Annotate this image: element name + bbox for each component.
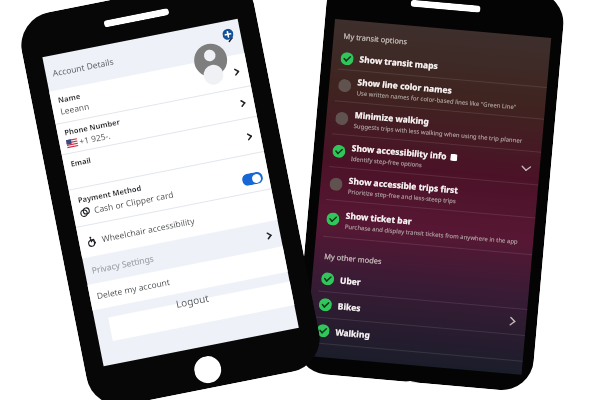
button[interactable]: Show line color names — [328, 69, 547, 120]
staticText: Name — [57, 91, 81, 105]
staticText: Suggests trips with less walking when us… — [353, 122, 523, 145]
staticText: Wheelchair accessibility — [101, 215, 196, 245]
button[interactable]: Account Details — [42, 19, 244, 92]
button[interactable]: Payment Method — [69, 152, 271, 227]
button[interactable]: Phone Number — [56, 86, 257, 154]
staticText: +1 925-. — [78, 130, 112, 148]
staticText: Email — [70, 155, 92, 169]
staticText: Bikes — [337, 300, 361, 314]
button[interactable]: Home — [396, 380, 427, 383]
staticText: Walking — [335, 326, 371, 341]
staticText: Use written names for color-based lines … — [356, 89, 517, 111]
staticText: Identify step-free options — [350, 155, 423, 169]
staticText: Leeann — [59, 100, 91, 118]
button[interactable]: Email — [62, 117, 264, 190]
button[interactable]: Delete my account — [87, 246, 288, 310]
button[interactable]: Cash or Clipper card toggle — [241, 171, 264, 187]
button[interactable]: Show accessible trips first — [319, 166, 538, 218]
staticText: Show transit maps — [359, 53, 439, 72]
button[interactable]: Show ticket bar — [316, 199, 535, 255]
staticText: Show line color names — [357, 76, 453, 97]
staticText: Show accessible trips first — [348, 175, 459, 196]
button[interactable]: Home — [192, 354, 224, 385]
staticText: Show ticket bar — [345, 210, 412, 227]
button[interactable]: Uber — [311, 265, 529, 310]
button[interactable]: Show transit maps — [331, 46, 549, 88]
staticText: Account Details — [52, 56, 115, 79]
button[interactable]: Logout — [92, 272, 294, 344]
staticText: Payment Method — [77, 183, 142, 205]
staticText: Uber — [339, 274, 361, 288]
button[interactable]: Minimize walking — [325, 101, 544, 153]
staticText: Prioritize step-free and less-steep trip… — [348, 188, 457, 205]
button[interactable]: Wheelchair accessibility — [76, 189, 277, 258]
staticText: Minimize walking — [354, 109, 430, 128]
button[interactable]: Account avatar — [189, 27, 242, 80]
button[interactable]: Show accessibility info — [322, 134, 541, 186]
staticText: Privacy Settings — [91, 253, 155, 277]
button[interactable]: Name — [49, 53, 251, 124]
staticText: Purchase and display transit tickets fro… — [344, 223, 518, 246]
staticText: Show accessibility info — [351, 142, 448, 162]
staticText: Delete my account — [96, 276, 172, 302]
button[interactable]: Walking — [306, 317, 525, 362]
staticText: My other modes — [324, 251, 382, 266]
staticText: My transit options — [343, 31, 408, 46]
staticText: Phone Number — [63, 116, 121, 137]
button[interactable]: Bikes — [309, 291, 527, 336]
staticText: Cash or Clipper card — [93, 189, 175, 216]
staticText: Logout — [174, 291, 211, 311]
button[interactable]: Privacy Settings — [82, 220, 283, 285]
